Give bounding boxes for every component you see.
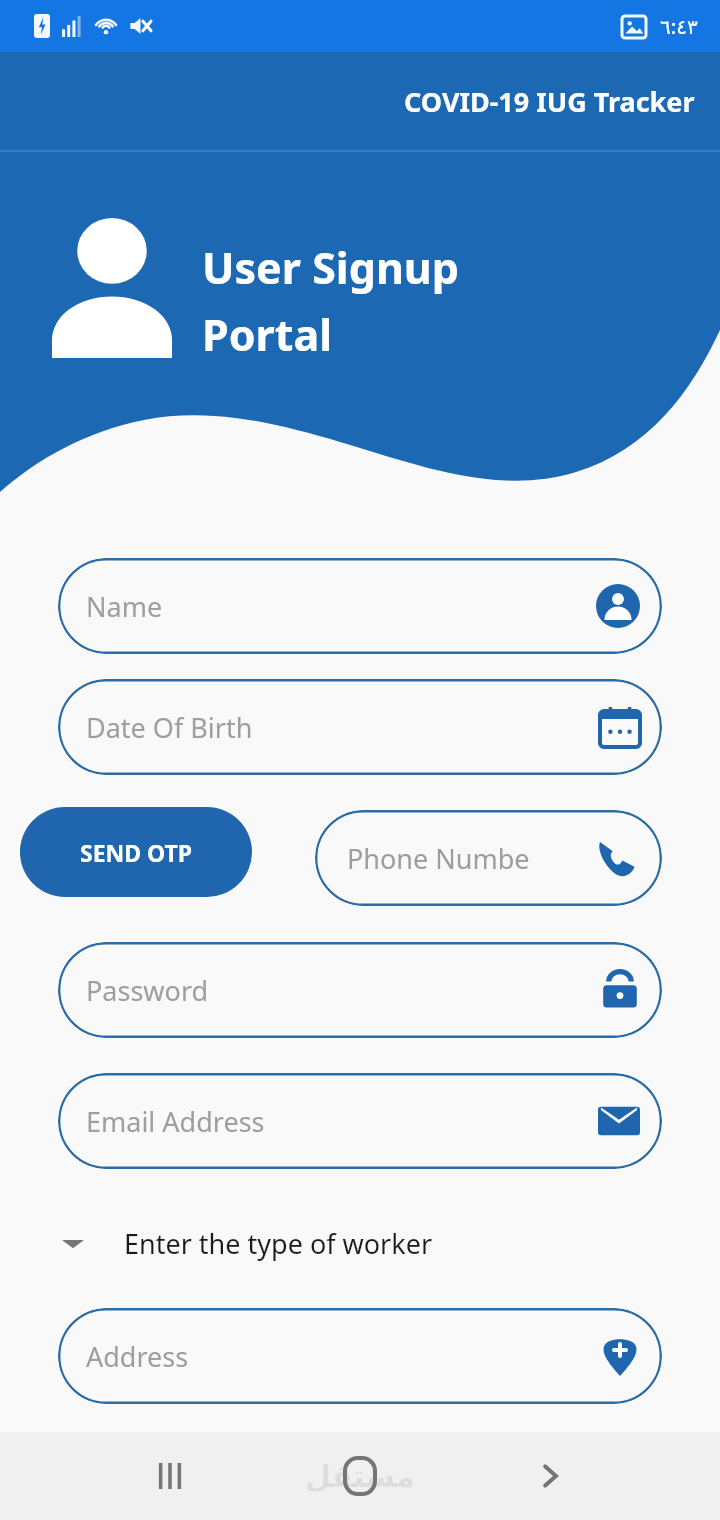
staticText: Email Address [86,1103,265,1140]
staticText: Enter the type of worker [124,1225,433,1262]
button[interactable]: Phone Numbe [315,810,662,906]
staticText: Password [86,972,209,1009]
button[interactable]: Address [58,1308,662,1404]
button[interactable]: SEND OTP [20,807,252,897]
button[interactable]: Name [58,558,662,654]
staticText: Phone Numbe [347,840,530,877]
button[interactable]: Back [520,1446,580,1506]
button[interactable]: Home [328,1444,392,1508]
staticText: ٦:٤٣ [660,13,698,40]
staticText: Date Of Birth [86,709,253,746]
button[interactable]: Password [58,942,662,1038]
staticText: COVID-19 IUG Tracker [404,83,695,120]
button[interactable]: Date Of Birth [58,679,662,775]
button[interactable]: Recents [140,1446,200,1506]
button[interactable]: Enter the type of worker [60,1212,520,1274]
staticText: User Signup [202,238,459,297]
staticText: Portal [202,305,333,364]
staticText: Address [86,1338,189,1375]
staticText: SEND OTP [80,837,193,868]
staticText: مستقل [305,1459,415,1494]
staticText: Name [86,588,163,625]
button[interactable]: Email Address [58,1073,662,1169]
